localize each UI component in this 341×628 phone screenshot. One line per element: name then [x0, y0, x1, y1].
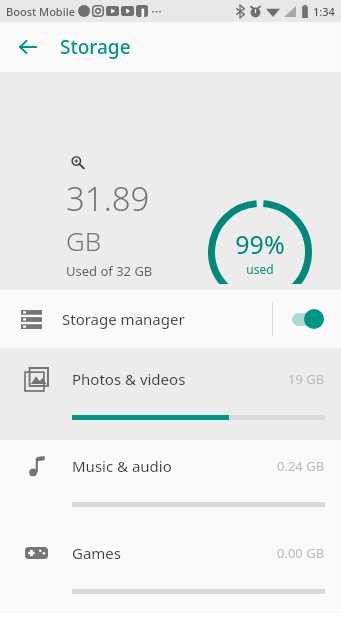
staticText: 0.00 GB [277, 544, 325, 562]
staticText: FREE UP SPACE [84, 305, 162, 320]
staticText: 0.24 GB [277, 457, 325, 475]
staticText: GB [66, 223, 102, 258]
staticText: Storage [60, 34, 131, 60]
staticText: Games [72, 543, 122, 563]
button[interactable]: Storage manager [0, 290, 341, 348]
staticText: Used of 32 GB [66, 262, 153, 280]
staticText: Storage manager [62, 309, 185, 329]
staticText: Photos & videos [72, 369, 186, 389]
staticText: Music & audio [72, 456, 172, 476]
button[interactable]: Back [8, 27, 48, 67]
button[interactable]: Games [0, 527, 341, 614]
staticText: 19 GB [288, 370, 325, 388]
staticText: 31.89 [66, 176, 150, 221]
staticText: used [246, 261, 274, 277]
staticText: 1:34 [313, 4, 335, 19]
button[interactable]: FREE UP SPACE [70, 297, 175, 327]
staticText: Boost Mobile [6, 4, 75, 19]
staticText: 99% [235, 227, 285, 261]
button[interactable]: Photos & videos [0, 353, 341, 440]
button[interactable]: Storage manager toggle [273, 290, 341, 348]
button[interactable]: Music & audio [0, 440, 341, 527]
